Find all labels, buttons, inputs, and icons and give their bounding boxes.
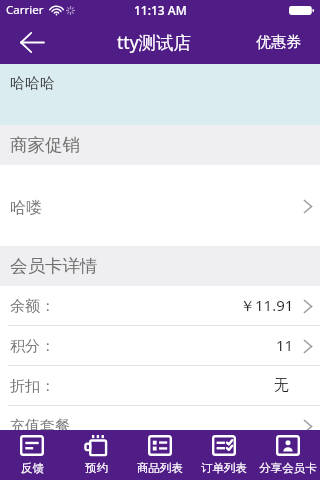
button[interactable]: 哈喽 bbox=[0, 165, 320, 246]
staticText: ￥11.91 bbox=[240, 295, 294, 315]
staticText: 哈哈哈 bbox=[10, 74, 55, 93]
staticText: 余额： bbox=[10, 297, 55, 316]
button[interactable]: 充值套餐 bbox=[0, 406, 320, 446]
button[interactable]: 商品列表 bbox=[128, 430, 192, 480]
button[interactable]: 余额： bbox=[0, 286, 320, 326]
button[interactable]: 分享会员卡 bbox=[256, 430, 320, 480]
staticText: 反馈 bbox=[21, 461, 44, 475]
button[interactable]: 反馈 bbox=[0, 430, 64, 480]
staticText: 积分： bbox=[10, 337, 55, 356]
staticText: 商品列表 bbox=[137, 461, 183, 475]
staticText: 预约 bbox=[85, 461, 108, 475]
button[interactable]: 折扣： bbox=[0, 366, 320, 406]
staticText: 无 bbox=[274, 376, 289, 395]
staticText: Carrier bbox=[6, 2, 44, 18]
staticText: 会员卡详情 bbox=[10, 255, 98, 277]
staticText: 充值套餐 bbox=[10, 417, 70, 436]
staticText: 11:13 AM bbox=[134, 2, 187, 18]
staticText: 订单列表 bbox=[201, 461, 247, 475]
staticText: 11 bbox=[276, 335, 294, 355]
staticText: 分享会员卡 bbox=[259, 461, 317, 475]
button[interactable]: 订单列表 bbox=[192, 430, 256, 480]
staticText: tty测试店 bbox=[117, 30, 192, 54]
button[interactable]: 优惠券 bbox=[237, 20, 320, 64]
staticText: 哈喽 bbox=[10, 198, 42, 218]
button[interactable]: Back bbox=[10, 20, 54, 64]
button[interactable]: 预约 bbox=[64, 430, 128, 480]
staticText: 优惠券 bbox=[256, 33, 301, 52]
staticText: 商家促销 bbox=[10, 134, 80, 156]
staticText: 折扣： bbox=[10, 377, 55, 396]
button[interactable]: 积分： bbox=[0, 326, 320, 366]
